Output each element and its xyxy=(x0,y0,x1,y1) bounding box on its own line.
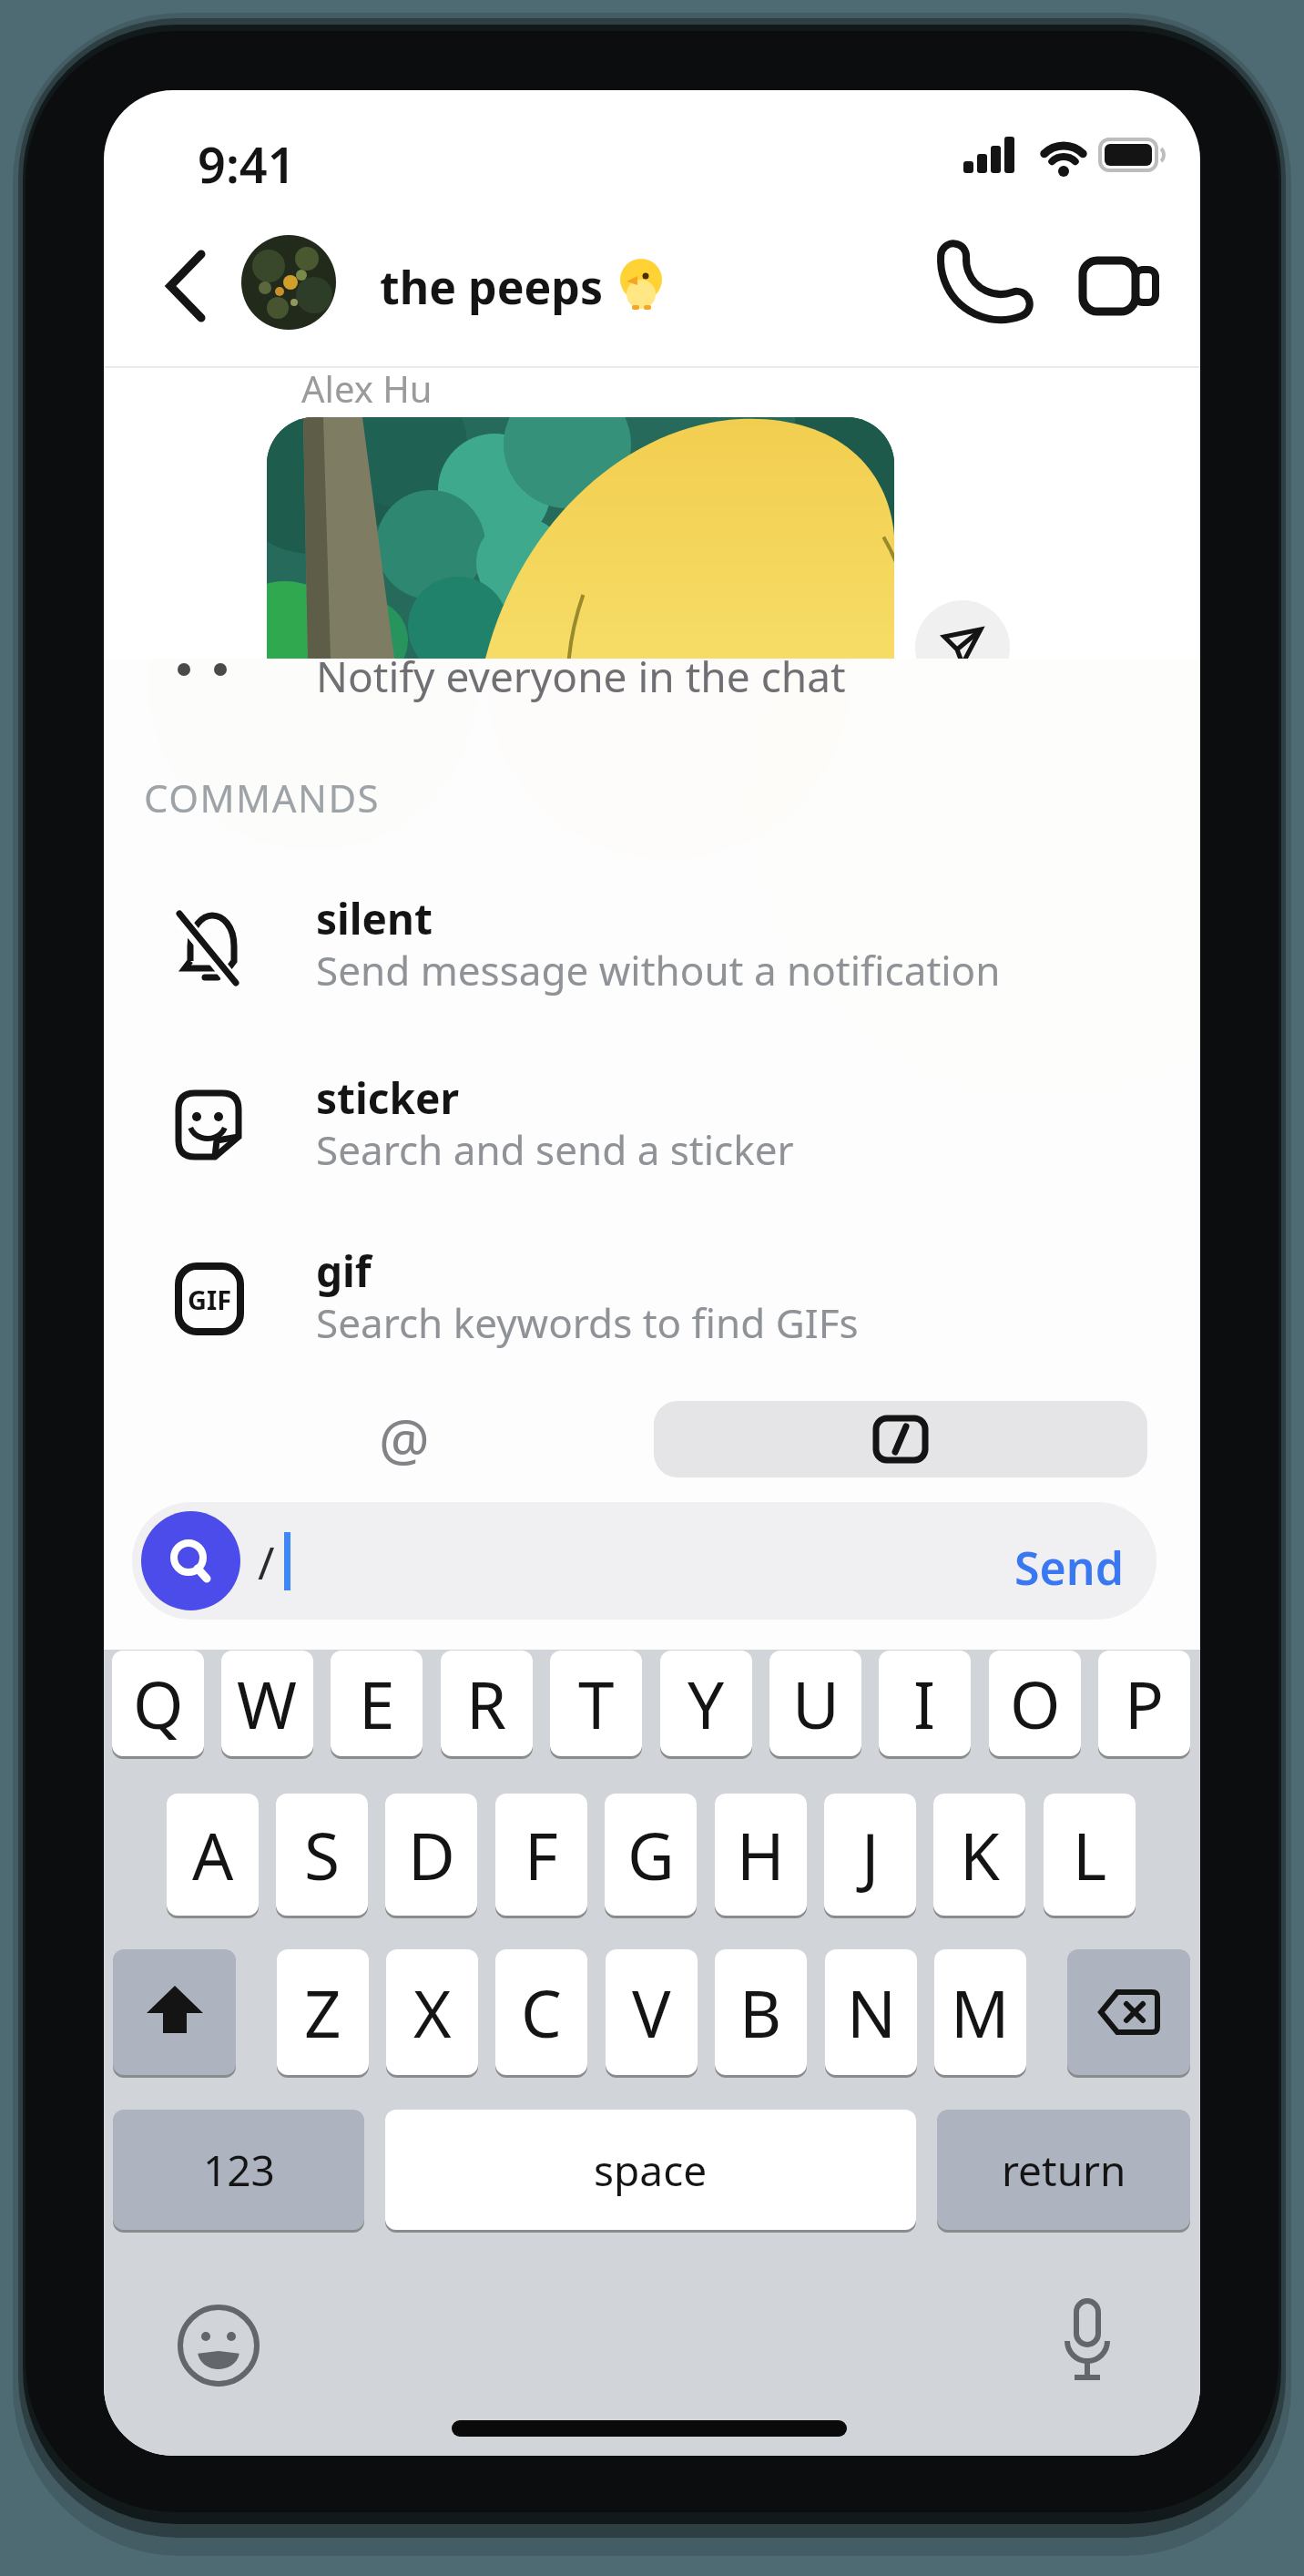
staticText: E xyxy=(359,1660,395,1748)
button[interactable]: Z xyxy=(277,1949,369,2075)
staticText: Alex Hu xyxy=(301,363,433,413)
staticText: M xyxy=(951,1968,1010,2057)
button[interactable]: S xyxy=(276,1794,368,1916)
staticText: N xyxy=(847,1968,896,2057)
staticText: I xyxy=(913,1660,936,1748)
button[interactable]: 123 xyxy=(113,2110,364,2230)
button[interactable]: N xyxy=(825,1949,917,2075)
button[interactable]: O xyxy=(989,1651,1081,1756)
button[interactable]: V xyxy=(606,1949,698,2075)
button[interactable]: A xyxy=(167,1794,259,1916)
button[interactable]: K xyxy=(933,1794,1025,1916)
staticText: S xyxy=(304,1811,340,1899)
staticText: L xyxy=(1073,1811,1107,1899)
button[interactable] xyxy=(923,236,1033,336)
button[interactable]: L xyxy=(1044,1794,1136,1916)
staticText: space xyxy=(594,2142,708,2199)
button[interactable]: X xyxy=(386,1949,478,2075)
staticText: silent xyxy=(316,890,433,947)
staticText: W xyxy=(237,1660,298,1748)
staticText: / xyxy=(258,1531,275,1593)
staticText: Notify everyone in the chat xyxy=(316,648,846,705)
button[interactable] xyxy=(1036,2289,1138,2397)
staticText: R xyxy=(466,1660,507,1748)
button[interactable]: U xyxy=(769,1651,861,1756)
button[interactable]: W xyxy=(221,1651,313,1756)
staticText: J xyxy=(861,1811,880,1899)
button[interactable]: T xyxy=(550,1651,642,1756)
staticText: Search and send a sticker xyxy=(316,1122,794,1177)
staticText: T xyxy=(578,1660,615,1748)
button[interactable]: B xyxy=(715,1949,807,2075)
staticText: Search keywords to find GIFs xyxy=(316,1295,859,1350)
button[interactable]: D xyxy=(385,1794,477,1916)
staticText: return xyxy=(1002,2142,1126,2199)
button[interactable] xyxy=(1067,1949,1190,2075)
staticText: K xyxy=(960,1811,1000,1899)
button[interactable]: / xyxy=(132,1502,1156,1620)
staticText: U xyxy=(792,1660,840,1748)
button[interactable]: F xyxy=(495,1794,587,1916)
button[interactable]: silent xyxy=(140,883,1164,1038)
button[interactable]: space xyxy=(385,2110,916,2230)
staticText: C xyxy=(521,1968,562,2057)
button[interactable] xyxy=(241,235,336,330)
button[interactable]: I xyxy=(879,1651,971,1756)
staticText: Send message without a notification xyxy=(316,943,1001,997)
button[interactable] xyxy=(1060,236,1178,336)
button[interactable]: sticker xyxy=(140,1062,1164,1217)
staticText: V xyxy=(632,1968,671,2057)
button[interactable]: Q xyxy=(112,1651,204,1756)
button[interactable]: P xyxy=(1098,1651,1190,1756)
staticText: G xyxy=(627,1811,675,1899)
staticText: F xyxy=(525,1811,558,1899)
staticText: Z xyxy=(304,1968,341,2057)
button[interactable]: G xyxy=(605,1794,697,1916)
staticText: @ xyxy=(379,1400,430,1477)
staticText: O xyxy=(1010,1660,1061,1748)
staticText: the peeps xyxy=(380,256,604,318)
staticText: 9:41 xyxy=(198,130,296,198)
staticText: gif xyxy=(316,1242,372,1300)
staticText: P xyxy=(1125,1660,1164,1748)
staticText: sticker xyxy=(316,1069,460,1127)
staticText: COMMANDS xyxy=(144,772,381,823)
button[interactable]: return xyxy=(937,2110,1190,2230)
button[interactable]: E xyxy=(331,1651,423,1756)
button[interactable] xyxy=(654,1401,1147,1477)
staticText: 123 xyxy=(203,2142,275,2199)
staticText: H xyxy=(737,1811,785,1899)
button[interactable]: H xyxy=(715,1794,807,1916)
button[interactable]: R xyxy=(441,1651,533,1756)
button[interactable] xyxy=(113,1949,236,2075)
button[interactable]: @ xyxy=(350,1393,459,1484)
button[interactable]: GIF xyxy=(140,1235,1164,1390)
staticText: B xyxy=(739,1968,782,2057)
button[interactable]: M xyxy=(934,1949,1026,2075)
staticText: D xyxy=(408,1811,455,1899)
button[interactable]: Y xyxy=(660,1651,752,1756)
staticText: A xyxy=(192,1811,234,1899)
staticText: X xyxy=(413,1968,452,2057)
button[interactable]: J xyxy=(824,1794,916,1916)
button[interactable]: C xyxy=(495,1949,587,2075)
staticText: Y xyxy=(688,1660,725,1748)
button[interactable] xyxy=(168,2295,270,2397)
button[interactable] xyxy=(149,245,222,327)
staticText: Q xyxy=(133,1660,184,1748)
staticText: GIF xyxy=(188,1282,232,1317)
button[interactable] xyxy=(915,600,1010,695)
button[interactable]: Send xyxy=(1014,1537,1124,1599)
